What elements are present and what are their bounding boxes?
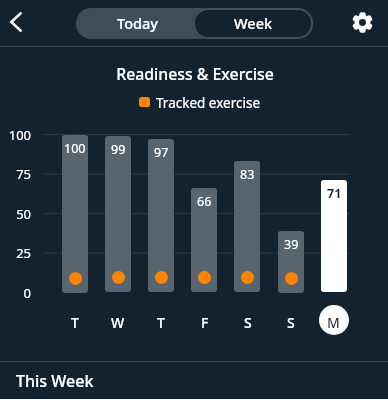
staticText: S [287, 313, 295, 332]
button[interactable]: Settings [340, 0, 384, 44]
staticText: 71 [327, 185, 342, 202]
staticText: 39 [284, 236, 299, 253]
staticText: 100 [64, 140, 86, 157]
button[interactable]: 71 [321, 180, 347, 292]
button[interactable]: Today [76, 8, 198, 39]
button[interactable]: 66 [191, 188, 217, 292]
staticText: 0 [23, 284, 31, 302]
staticText: 25 [16, 244, 31, 262]
button[interactable]: Back [0, 0, 38, 44]
button[interactable]: S [276, 308, 305, 337]
staticText: Today [117, 13, 158, 33]
staticText: 83 [240, 166, 255, 183]
staticText: 50 [16, 205, 31, 223]
staticText: Tracked exercise [156, 94, 261, 112]
button[interactable]: W [103, 308, 132, 337]
button[interactable]: S [233, 308, 262, 337]
staticText: T [71, 313, 79, 332]
button[interactable]: 99 [105, 136, 131, 292]
staticText: M [327, 313, 340, 332]
button[interactable]: T [60, 308, 89, 337]
staticText: 100 [8, 126, 31, 144]
button[interactable]: 39 [278, 231, 304, 293]
button[interactable]: Week [193, 8, 313, 39]
staticText: 66 [197, 193, 212, 210]
staticText: F [201, 313, 209, 332]
staticText: W [111, 313, 125, 332]
staticText: S [244, 313, 252, 332]
button[interactable]: 100 [62, 135, 88, 293]
staticText: 99 [111, 141, 126, 158]
staticText: Readiness & Exercise [116, 63, 274, 85]
staticText: T [157, 313, 165, 332]
staticText: Week [234, 13, 273, 33]
staticText: 97 [154, 144, 169, 161]
staticText: 75 [16, 165, 31, 183]
button[interactable]: F [190, 308, 219, 337]
staticText: This Week [16, 370, 94, 392]
button[interactable]: T [146, 308, 175, 337]
button[interactable]: 97 [148, 139, 174, 292]
button[interactable]: 83 [234, 161, 260, 292]
button[interactable]: M [319, 308, 348, 337]
